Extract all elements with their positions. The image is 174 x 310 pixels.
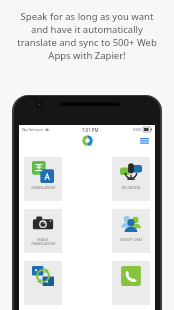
staticText: Speak for as long as you want [10, 10, 164, 23]
staticText: GROUP CHAT [112, 237, 150, 242]
staticText: DICTATION [112, 185, 150, 190]
staticText: IMAGE TRANSLATION [24, 237, 62, 247]
button[interactable]: IMAGE TRANSLATION [24, 209, 62, 253]
button[interactable]: DICTATION [112, 157, 150, 201]
staticText: translate and sync to 500+ Web [10, 36, 164, 49]
button[interactable]: App logo [82, 135, 93, 146]
staticText: TRANSLATION [24, 185, 62, 190]
button[interactable]: GROUP CHAT [112, 209, 150, 253]
staticText: No Service [22, 127, 43, 133]
staticText: and have it automatically [10, 23, 164, 36]
button[interactable]: TRANSLATION [24, 157, 62, 201]
button[interactable] [112, 261, 150, 305]
button[interactable]: Menu [139, 135, 150, 146]
staticText: 7:01 PM [82, 127, 99, 133]
staticText: Apps with Zapier! [10, 49, 164, 62]
button[interactable] [24, 261, 62, 305]
staticText: 92% [133, 127, 142, 133]
